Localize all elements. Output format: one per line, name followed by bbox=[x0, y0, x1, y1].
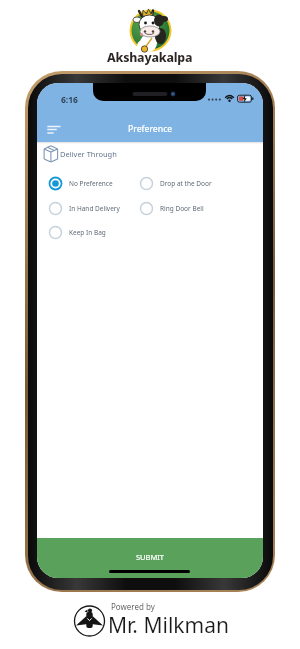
staticText: Deliver Through bbox=[60, 149, 117, 159]
staticText: No Preference bbox=[69, 179, 113, 188]
staticText: Mr. Milkman bbox=[108, 611, 229, 640]
staticText: Powered by bbox=[111, 601, 155, 612]
button[interactable]: Drop at the Door bbox=[140, 174, 212, 192]
button[interactable]: Keep In Bag bbox=[49, 223, 106, 241]
button[interactable]: SUBMIT bbox=[37, 538, 263, 578]
staticText: Preference bbox=[128, 123, 173, 135]
staticText: 6:16 bbox=[61, 94, 78, 105]
staticText: Ring Door Bell bbox=[160, 204, 204, 213]
button[interactable] bbox=[42, 120, 66, 138]
staticText: In Hand Delivery bbox=[69, 204, 120, 213]
button[interactable]: Ring Door Bell bbox=[140, 199, 204, 217]
staticText: Keep In Bag bbox=[69, 228, 106, 237]
staticText: SUBMIT bbox=[136, 552, 164, 562]
button[interactable]: In Hand Delivery bbox=[49, 199, 120, 217]
staticText: Drop at the Door bbox=[160, 179, 212, 188]
staticText: Akshayakalpa bbox=[107, 49, 193, 66]
button[interactable]: No Preference bbox=[49, 174, 113, 192]
